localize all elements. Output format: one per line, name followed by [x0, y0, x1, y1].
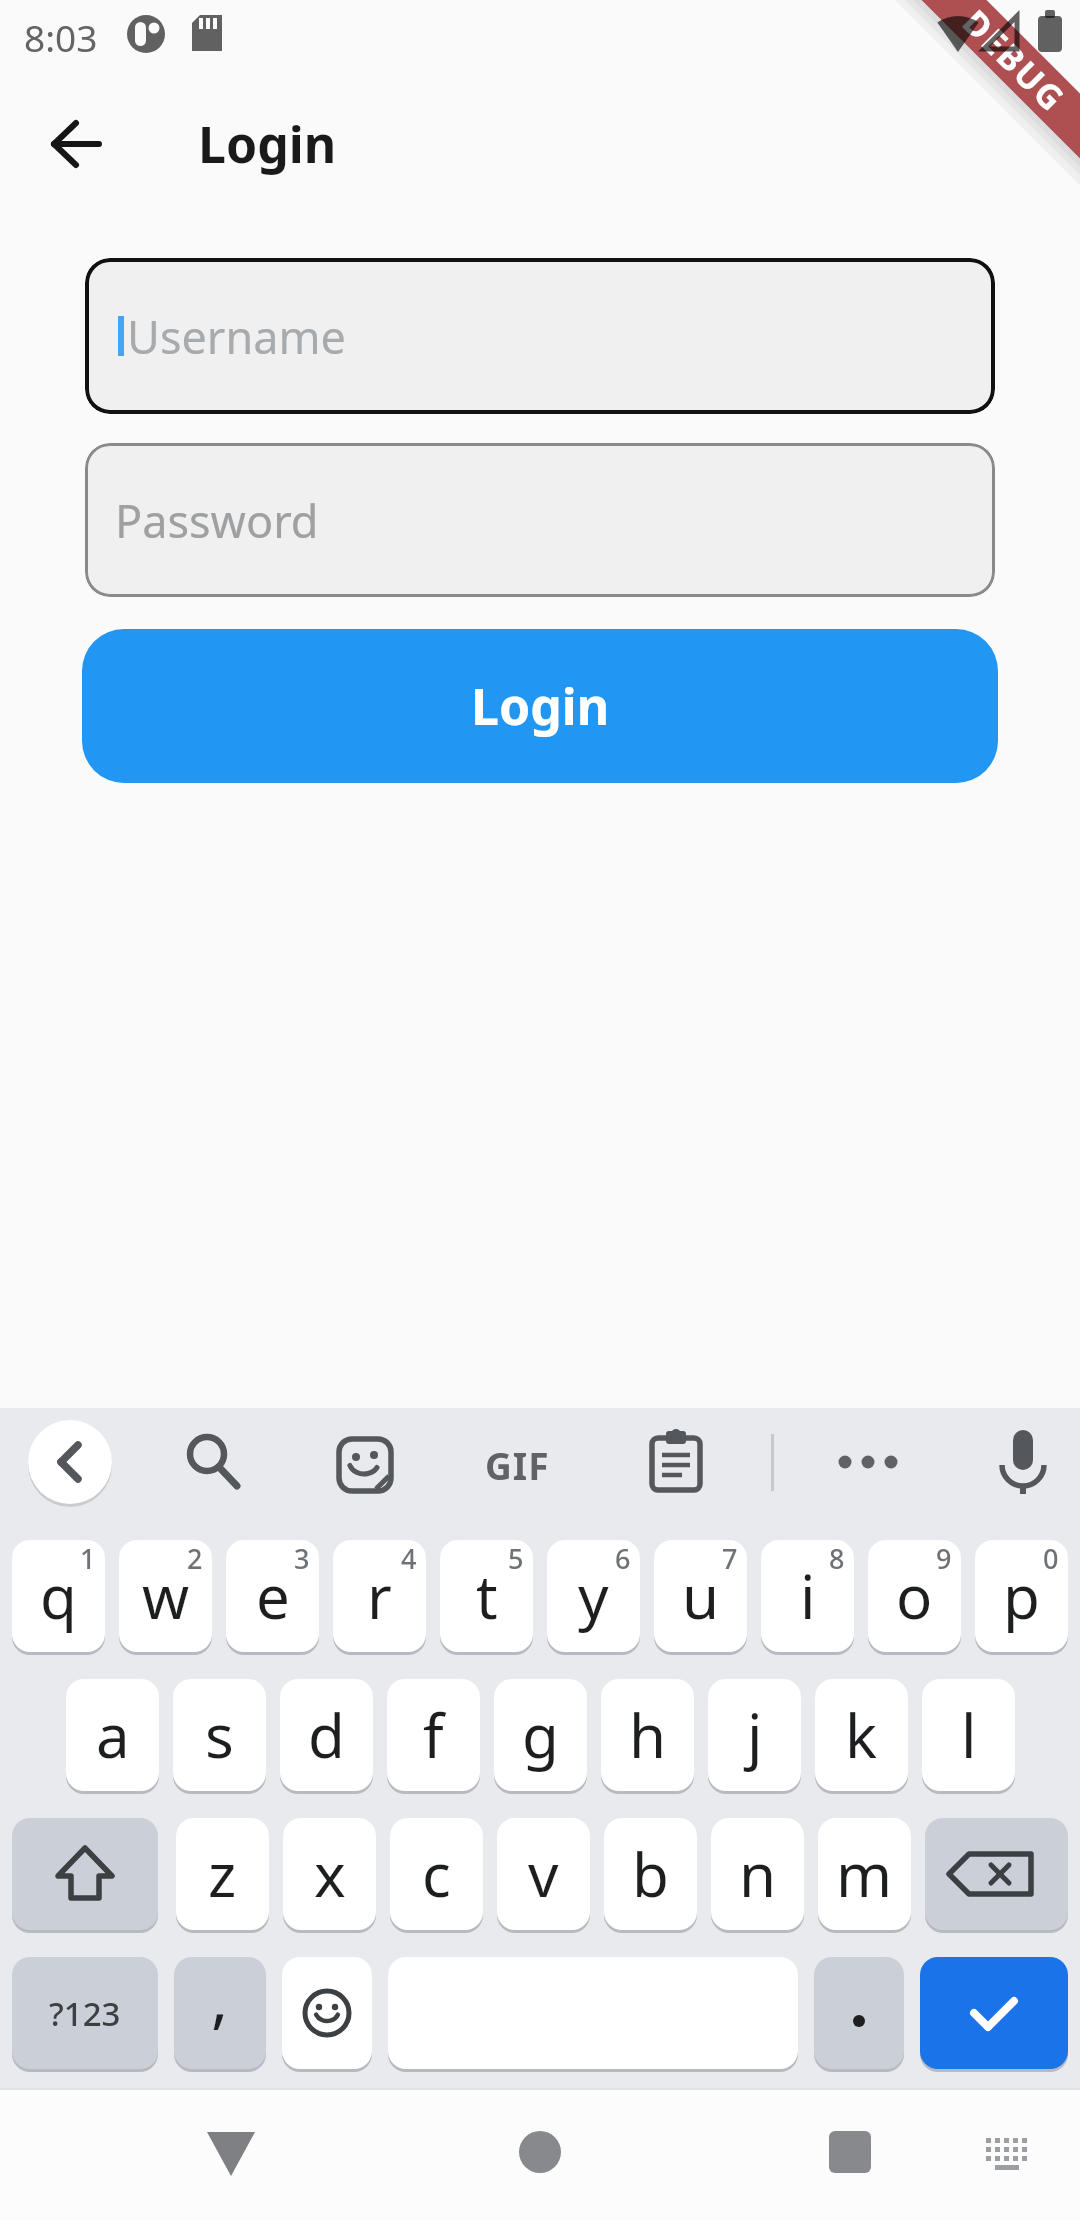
button[interactable]: ,: [174, 1957, 266, 2069]
staticText: 7: [722, 1540, 738, 1577]
staticText: 2: [187, 1540, 203, 1577]
button[interactable]: ?123: [12, 1957, 158, 2069]
staticText: b: [632, 1833, 669, 1915]
staticText: q: [40, 1555, 77, 1637]
button[interactable]: d: [280, 1679, 373, 1791]
staticText: j: [747, 1694, 763, 1776]
button[interactable]: o: [868, 1540, 961, 1652]
button[interactable]: p: [975, 1540, 1068, 1652]
staticText: e: [256, 1555, 290, 1637]
button[interactable]: w: [119, 1540, 212, 1652]
staticText: s: [205, 1694, 234, 1776]
staticText: n: [739, 1833, 777, 1915]
button[interactable]: j: [708, 1679, 801, 1791]
staticText: o: [896, 1555, 933, 1637]
staticText: f: [423, 1694, 444, 1776]
staticText: u: [682, 1555, 720, 1637]
staticText: 8:03: [24, 12, 98, 62]
staticText: y: [578, 1555, 609, 1637]
button[interactable]: [920, 1957, 1068, 2069]
button[interactable]: e: [226, 1540, 319, 1652]
button[interactable]: [205, 2130, 257, 2178]
staticText: 8: [829, 1540, 845, 1577]
staticText: 3: [294, 1540, 310, 1577]
staticText: h: [629, 1694, 667, 1776]
button[interactable]: [925, 1818, 1068, 1930]
button[interactable]: [185, 1432, 243, 1490]
staticText: i: [800, 1555, 816, 1637]
button[interactable]: [648, 1428, 704, 1494]
button[interactable]: [829, 2131, 871, 2173]
button[interactable]: s: [173, 1679, 266, 1791]
button[interactable]: [984, 2134, 1030, 2174]
staticText: r: [367, 1555, 392, 1637]
button[interactable]: a: [66, 1679, 159, 1791]
staticText: 0: [1043, 1540, 1059, 1577]
button[interactable]: [12, 1818, 158, 1930]
staticText: g: [522, 1694, 559, 1776]
button[interactable]: v: [497, 1818, 590, 1930]
staticText: 5: [508, 1540, 524, 1577]
staticText: Password: [115, 490, 319, 551]
staticText: ,: [211, 1954, 229, 2041]
staticText: 1: [80, 1540, 96, 1577]
button[interactable]: i: [761, 1540, 854, 1652]
button[interactable]: [282, 1957, 372, 2069]
button[interactable]: c: [390, 1818, 483, 1930]
staticText: Login: [198, 110, 337, 178]
button[interactable]: Password: [85, 443, 995, 597]
button[interactable]: h: [601, 1679, 694, 1791]
button[interactable]: [28, 1420, 112, 1504]
staticText: a: [96, 1694, 130, 1776]
button[interactable]: [336, 1436, 394, 1494]
staticText: z: [208, 1833, 237, 1915]
button[interactable]: b: [604, 1818, 697, 1930]
staticText: Login: [471, 672, 610, 740]
staticText: 9: [936, 1540, 952, 1577]
button[interactable]: [814, 1957, 904, 2069]
staticText: v: [528, 1833, 559, 1915]
staticText: k: [845, 1694, 878, 1776]
button[interactable]: [1000, 1428, 1046, 1496]
staticText: 4: [401, 1540, 417, 1577]
button[interactable]: Login: [82, 629, 998, 783]
button[interactable]: r: [333, 1540, 426, 1652]
staticText: ?123: [49, 1991, 121, 2036]
button[interactable]: n: [711, 1818, 804, 1930]
staticText: c: [422, 1833, 451, 1915]
staticText: t: [476, 1555, 498, 1637]
button[interactable]: GIF: [485, 1440, 550, 1490]
staticText: DEBUG: [953, 0, 1075, 121]
button[interactable]: x: [283, 1818, 376, 1930]
button[interactable]: [50, 118, 102, 170]
staticText: Username: [127, 306, 346, 367]
staticText: 6: [615, 1540, 631, 1577]
button[interactable]: k: [815, 1679, 908, 1791]
button[interactable]: l: [922, 1679, 1015, 1791]
staticText: m: [836, 1833, 893, 1915]
button[interactable]: Username: [85, 258, 995, 414]
button[interactable]: f: [387, 1679, 480, 1791]
staticText: p: [1003, 1555, 1040, 1637]
staticText: x: [314, 1833, 346, 1915]
button[interactable]: m: [818, 1818, 911, 1930]
button[interactable]: g: [494, 1679, 587, 1791]
button[interactable]: t: [440, 1540, 533, 1652]
button[interactable]: [519, 2131, 561, 2173]
button[interactable]: q: [12, 1540, 105, 1652]
button[interactable]: [838, 1455, 898, 1469]
button[interactable]: y: [547, 1540, 640, 1652]
button[interactable]: u: [654, 1540, 747, 1652]
staticText: d: [308, 1694, 345, 1776]
staticText: l: [961, 1694, 977, 1776]
button[interactable]: z: [176, 1818, 269, 1930]
staticText: w: [142, 1555, 190, 1637]
